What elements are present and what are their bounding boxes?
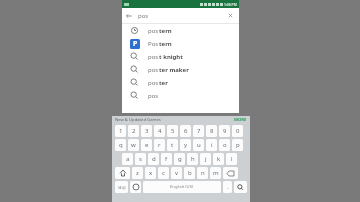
button[interactable]: b	[184, 167, 195, 179]
staticText: 7	[197, 127, 201, 135]
staticText: b	[188, 169, 192, 177]
staticText: pos	[148, 66, 159, 74]
staticText: .	[227, 183, 229, 191]
staticText: w	[131, 141, 136, 149]
button[interactable]: y	[180, 139, 191, 151]
button[interactable]: i	[206, 139, 217, 151]
staticText: 8	[210, 127, 214, 135]
button[interactable]: Back	[122, 9, 135, 22]
button[interactable]: P	[122, 37, 239, 50]
staticText: 2	[132, 127, 136, 135]
button[interactable]: z	[132, 167, 143, 179]
staticText: q	[119, 141, 123, 149]
staticText: o	[223, 141, 227, 149]
staticText: pos	[138, 12, 224, 20]
staticText: P	[133, 39, 138, 49]
staticText: n	[201, 169, 205, 177]
button[interactable]: 4	[154, 125, 165, 137]
staticText: pos	[148, 79, 159, 87]
button[interactable]: 7	[193, 125, 204, 137]
staticText: 1	[119, 127, 123, 135]
button[interactable]: .	[223, 181, 232, 193]
staticText: Pos	[148, 40, 159, 48]
button[interactable]: English (US)	[143, 181, 221, 193]
staticText: y	[184, 141, 188, 149]
staticText: 0	[236, 127, 240, 135]
button[interactable]: c	[158, 167, 169, 179]
staticText: t knight	[159, 53, 183, 61]
button[interactable]: Shift	[115, 167, 130, 179]
button[interactable]: Clear	[224, 9, 237, 22]
button[interactable]: Symbols	[115, 181, 128, 193]
staticText: i	[211, 141, 213, 149]
staticText: MORE	[234, 117, 247, 123]
button[interactable]: f	[161, 153, 172, 165]
staticText: pos	[148, 53, 159, 61]
button[interactable]: d	[148, 153, 159, 165]
button[interactable]: l	[226, 153, 237, 165]
button[interactable]: 9	[219, 125, 230, 137]
staticText: ter	[159, 79, 168, 87]
button[interactable]: k	[213, 153, 224, 165]
button[interactable]: s	[135, 153, 146, 165]
button[interactable]: v	[171, 167, 182, 179]
button[interactable]: j	[200, 153, 211, 165]
button[interactable]: pos	[122, 76, 239, 89]
button[interactable]: w	[128, 139, 139, 151]
staticText: 3	[145, 127, 149, 135]
staticText: r	[158, 141, 161, 149]
staticText: f	[165, 155, 168, 163]
staticText: p	[236, 141, 240, 149]
staticText: 4	[158, 127, 162, 135]
staticText: d	[152, 155, 156, 163]
button[interactable]: a	[122, 153, 133, 165]
button[interactable]: e	[141, 139, 152, 151]
staticText: 5	[171, 127, 175, 135]
staticText: ter maker	[159, 66, 189, 74]
staticText: u	[197, 141, 201, 149]
staticText: !#☺	[118, 185, 126, 190]
button[interactable]: pos	[122, 63, 239, 76]
staticText: t	[171, 141, 174, 149]
staticText: 9	[223, 127, 227, 135]
staticText: pos	[148, 27, 159, 35]
staticText: 6	[184, 127, 188, 135]
button[interactable]: q	[115, 139, 126, 151]
staticText: j	[205, 155, 207, 163]
button[interactable]: pos	[122, 24, 239, 37]
button[interactable]: Emoji	[130, 181, 141, 193]
button[interactable]: 0	[232, 125, 243, 137]
button[interactable]: g	[174, 153, 185, 165]
staticText: x	[149, 169, 153, 177]
button[interactable]: p	[232, 139, 243, 151]
staticText: l	[231, 155, 233, 163]
button[interactable]: 6	[180, 125, 191, 137]
staticText: e	[145, 141, 149, 149]
button[interactable]: r	[154, 139, 165, 151]
staticText: g	[178, 155, 182, 163]
button[interactable]: o	[219, 139, 230, 151]
button[interactable]: x	[145, 167, 156, 179]
staticText: h	[191, 155, 195, 163]
button[interactable]: Search	[234, 181, 247, 193]
button[interactable]: h	[187, 153, 198, 165]
button[interactable]: 5	[167, 125, 178, 137]
button[interactable]: u	[193, 139, 204, 151]
button[interactable]: 1	[115, 125, 126, 137]
button[interactable]: 3	[141, 125, 152, 137]
staticText: New & Updated Games	[115, 117, 161, 123]
button[interactable]: n	[197, 167, 208, 179]
staticText: m	[213, 169, 219, 177]
button[interactable]: 2	[128, 125, 139, 137]
button[interactable]: t	[167, 139, 178, 151]
button[interactable]: 8	[206, 125, 217, 137]
staticText: English (US)	[170, 184, 194, 190]
button[interactable]: MORE	[234, 117, 247, 123]
button[interactable]: pos	[122, 50, 239, 63]
button[interactable]: pos	[122, 89, 239, 102]
staticText: s	[139, 155, 142, 163]
button[interactable]: Backspace	[223, 167, 238, 179]
button[interactable]: m	[210, 167, 221, 179]
staticText: a	[126, 155, 130, 163]
staticText: tern	[159, 27, 172, 35]
